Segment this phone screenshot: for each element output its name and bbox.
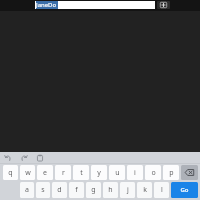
staticText: q [8, 168, 13, 178]
staticText: k [143, 185, 147, 195]
button[interactable]: Redo [19, 153, 29, 163]
staticText: r [62, 168, 65, 178]
button[interactable]: u [109, 165, 125, 180]
staticText: d [57, 185, 62, 195]
button[interactable]: g [86, 182, 101, 198]
button[interactable]: f [69, 182, 84, 198]
button[interactable]: Undo [3, 153, 13, 163]
button[interactable]: o [145, 165, 161, 180]
button[interactable]: w [20, 165, 35, 180]
button[interactable]: r [55, 165, 71, 180]
button[interactable]: JaneDoe [35, 1, 155, 9]
staticText: j [127, 185, 129, 195]
staticText: JaneDoe [36, 1, 58, 9]
button[interactable]: Paste [35, 153, 45, 163]
staticText: l [161, 185, 163, 195]
button[interactable]: y [91, 165, 107, 180]
staticText: e [43, 168, 47, 178]
button[interactable]: p [163, 165, 179, 180]
staticText: o [151, 168, 156, 178]
button[interactable]: e [37, 165, 53, 180]
staticText: f [75, 185, 78, 195]
staticText: t [80, 168, 83, 178]
staticText: h [108, 185, 113, 195]
staticText: p [169, 168, 174, 178]
staticText: s [41, 185, 45, 195]
button[interactable]: q [3, 165, 18, 180]
button[interactable]: h [103, 182, 118, 198]
button[interactable]: d [52, 182, 67, 198]
staticText: y [97, 168, 101, 178]
staticText: u [115, 168, 120, 178]
button[interactable]: t [73, 165, 89, 180]
staticText: w [25, 168, 31, 178]
button[interactable]: Add [157, 1, 170, 9]
button[interactable]: s [36, 182, 50, 198]
staticText: Go [180, 186, 189, 194]
staticText: g [91, 185, 96, 195]
button[interactable]: j [120, 182, 135, 198]
button[interactable]: a [20, 182, 34, 198]
button[interactable]: l [154, 182, 169, 198]
staticText: a [25, 185, 29, 195]
button[interactable]: Backspace [181, 165, 198, 180]
button[interactable]: Go [171, 182, 198, 198]
button[interactable]: k [137, 182, 152, 198]
button[interactable]: i [127, 165, 143, 180]
staticText: i [134, 168, 136, 178]
